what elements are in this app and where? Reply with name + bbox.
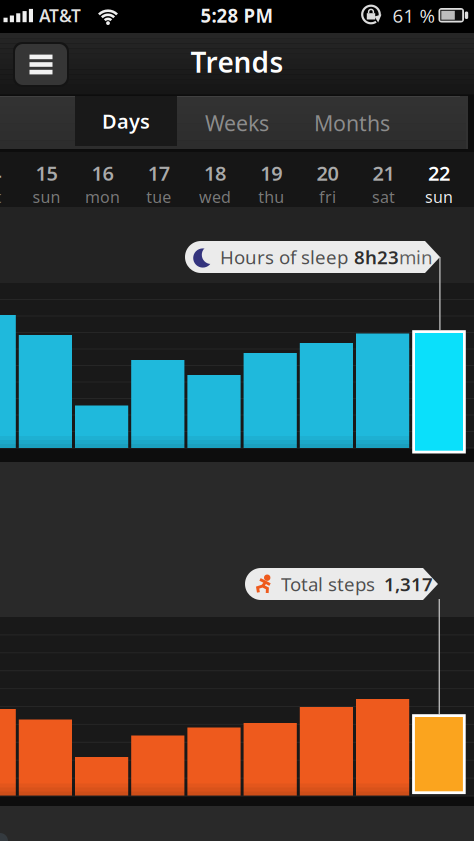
- staticText: 18: [204, 160, 226, 186]
- staticText: 8h23: [354, 245, 399, 269]
- staticText: 14: [0, 160, 1, 186]
- staticText: AT&T: [39, 4, 81, 27]
- staticText: Months: [314, 109, 390, 137]
- button[interactable]: 17: [133, 158, 185, 208]
- staticText: sat: [0, 186, 1, 207]
- staticText: sun: [32, 186, 60, 207]
- staticText: 61 %: [392, 3, 435, 28]
- staticText: sun: [425, 186, 453, 207]
- button[interactable]: 20: [301, 158, 353, 208]
- staticText: Weeks: [205, 109, 269, 137]
- staticText: 20: [316, 160, 338, 186]
- staticText: 21: [373, 160, 395, 186]
- button[interactable]: 15: [20, 158, 72, 208]
- button[interactable]: 21: [358, 158, 410, 208]
- staticText: wed: [199, 186, 231, 207]
- staticText: fri: [319, 186, 336, 207]
- button[interactable]: Weeks: [182, 95, 292, 150]
- staticText: 1,317: [384, 572, 433, 596]
- staticText: Days: [102, 108, 150, 134]
- staticText: 15: [35, 160, 57, 186]
- staticText: 19: [260, 160, 282, 186]
- button[interactable]: [13, 42, 69, 87]
- staticText: Total steps: [281, 572, 375, 596]
- staticText: 16: [92, 160, 114, 186]
- button[interactable]: 22: [413, 158, 465, 208]
- staticText: sat: [372, 186, 395, 207]
- staticText: Trends: [190, 43, 283, 81]
- button[interactable]: 14: [0, 158, 16, 208]
- staticText: tue: [146, 186, 171, 207]
- staticText: min: [399, 245, 433, 269]
- button[interactable]: 19: [245, 158, 297, 208]
- button[interactable]: 18: [189, 158, 241, 208]
- staticText: 5:28 PM: [200, 3, 273, 28]
- button[interactable]: Days: [75, 96, 177, 146]
- button[interactable]: 16: [77, 158, 129, 208]
- staticText: Hours of sleep: [220, 245, 348, 269]
- staticText: 17: [148, 160, 170, 186]
- staticText: 22: [428, 160, 450, 186]
- button[interactable]: Months: [297, 95, 407, 150]
- staticText: mon: [85, 186, 120, 207]
- staticText: thu: [258, 186, 284, 207]
